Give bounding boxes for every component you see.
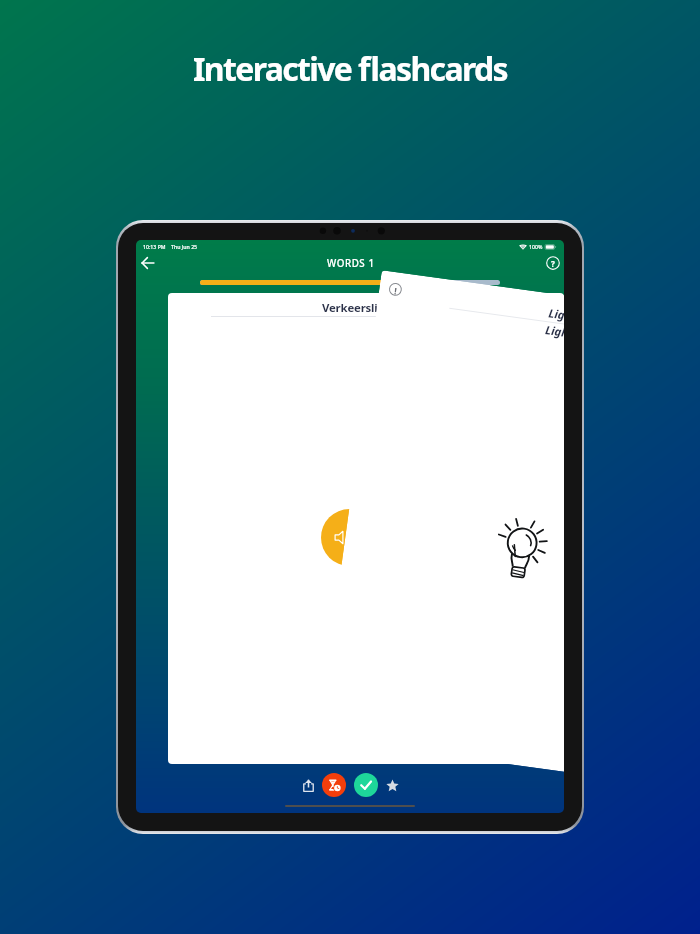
staticText: Thu Jun 25 xyxy=(171,243,198,250)
staticText: Lightning xyxy=(547,305,564,328)
button[interactable]: Verkeerslig xyxy=(168,293,564,764)
button[interactable]: Play audio xyxy=(321,509,378,566)
staticText: 100% xyxy=(529,243,543,250)
button[interactable]: Share xyxy=(296,773,320,797)
button[interactable]: Help xyxy=(542,252,564,274)
button[interactable]: ! xyxy=(318,270,564,792)
staticText: 10:13 PM xyxy=(143,243,166,250)
button[interactable]: Snooze xyxy=(322,773,346,797)
button[interactable]: Back xyxy=(136,251,160,275)
staticText: ? xyxy=(551,258,555,269)
staticText: WORDS 1 xyxy=(327,257,375,270)
staticText: Interactive flashcards xyxy=(0,47,700,91)
button[interactable]: Favourite xyxy=(380,773,404,797)
staticText: ! xyxy=(393,284,398,296)
staticText: Verkeerslig xyxy=(322,300,385,316)
staticText: Lightbulb xyxy=(544,322,564,345)
button[interactable]: Correct xyxy=(354,773,378,797)
